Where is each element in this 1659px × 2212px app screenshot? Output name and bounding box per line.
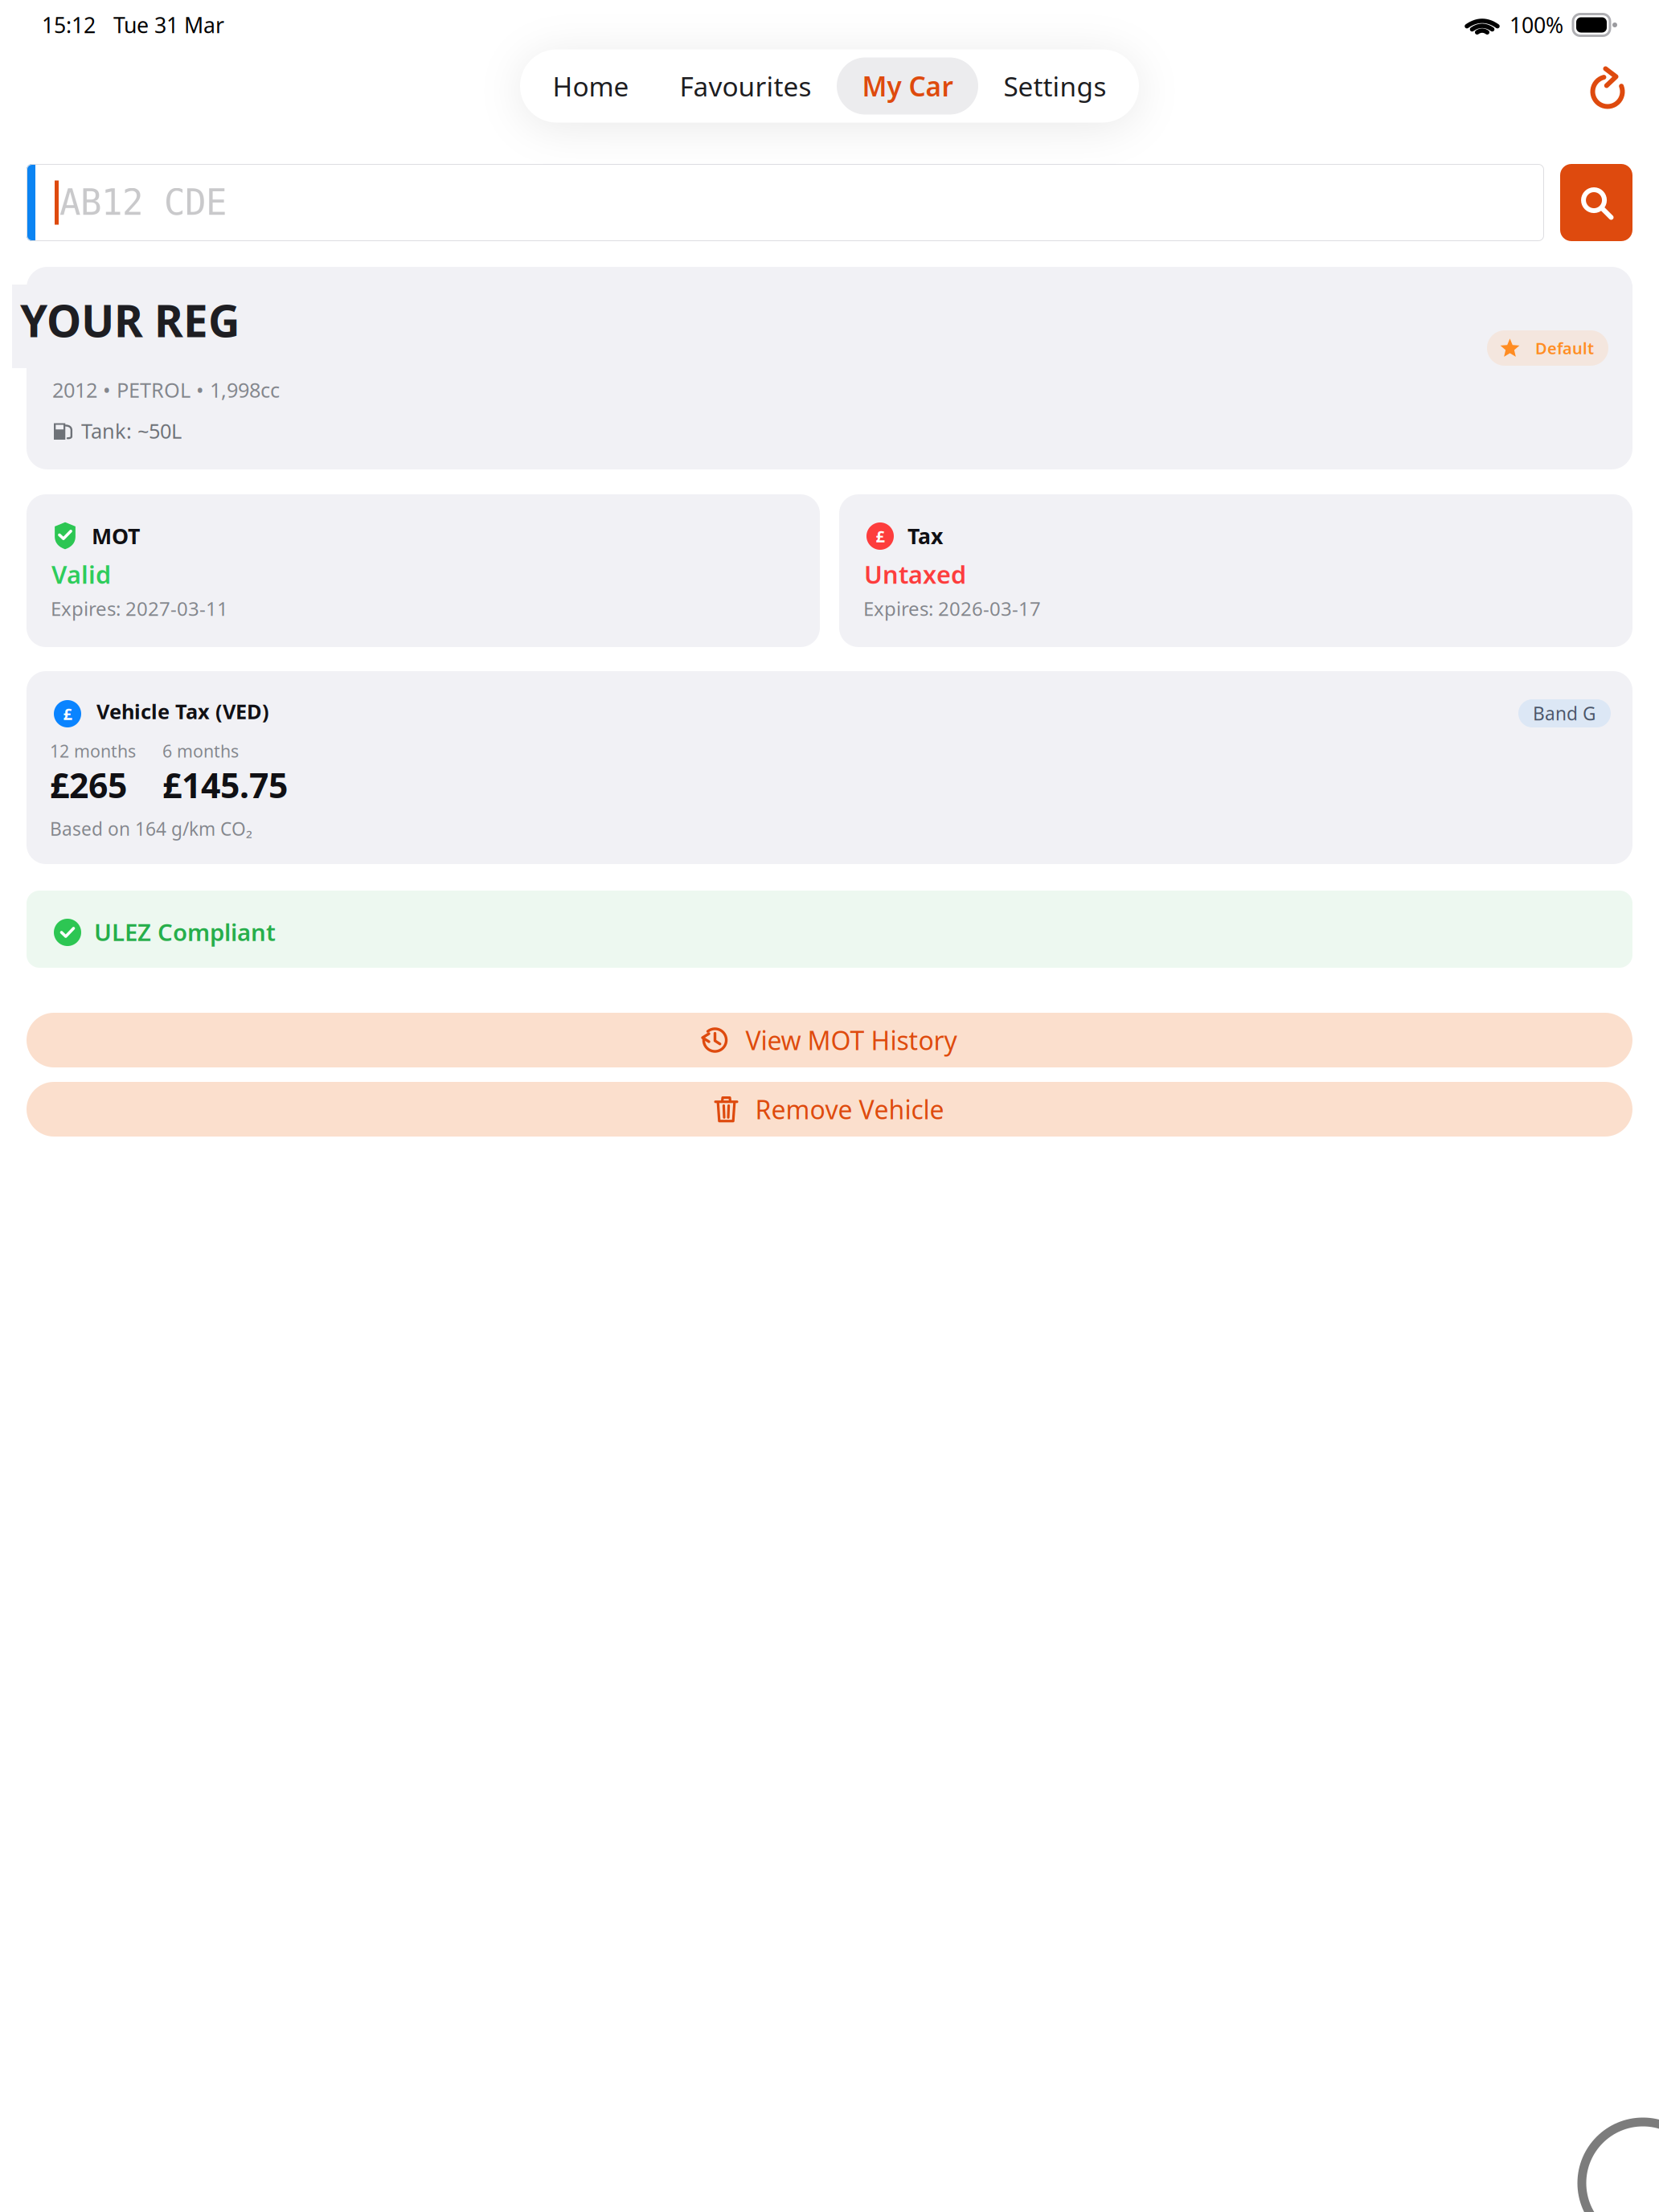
staticText: Tue 31 Mar: [113, 11, 224, 39]
staticText: Valid: [51, 558, 111, 591]
button[interactable]: View MOT History: [27, 1013, 1632, 1067]
button[interactable]: Search: [1560, 164, 1632, 241]
staticText: £: [876, 525, 885, 547]
staticText: 100%: [1509, 11, 1563, 39]
staticText: MOT: [92, 522, 140, 550]
button[interactable]: My Car: [837, 57, 978, 115]
button[interactable]: Home: [527, 57, 654, 115]
staticText: 15:12: [42, 11, 96, 39]
staticText: Vehicle Tax (VED): [96, 698, 269, 725]
button[interactable]: Refresh: [1569, 47, 1646, 125]
staticText: £265: [50, 762, 127, 808]
staticText: £145.75: [162, 762, 288, 808]
staticText: Untaxed: [864, 558, 966, 591]
staticText: Tax: [907, 522, 943, 550]
staticText: Default: [1535, 337, 1594, 359]
staticText: 12 months: [50, 739, 136, 762]
button[interactable]: Remove Vehicle: [27, 1082, 1632, 1137]
staticText: Favourites: [680, 68, 811, 104]
staticText: Band G: [1533, 701, 1596, 725]
staticText: ULEZ Compliant: [94, 916, 276, 948]
staticText: Based on 164 g/km CO₂: [50, 817, 252, 841]
button[interactable]: Favourites: [654, 57, 837, 115]
staticText: AB12 CDE: [59, 182, 227, 223]
staticText: My Car: [862, 68, 953, 104]
button[interactable]: Settings: [978, 57, 1132, 115]
staticText: Remove Vehicle: [755, 1092, 944, 1126]
staticText: Expires: 2027-03-11: [51, 596, 228, 621]
staticText: 2012 • PETROL • 1,998cc: [52, 376, 280, 403]
staticText: 6 months: [162, 739, 239, 762]
staticText: £: [63, 703, 72, 724]
staticText: Expires: 2026-03-17: [863, 596, 1041, 621]
staticText: Tank: ~50L: [81, 417, 182, 444]
staticText: Settings: [1004, 68, 1106, 104]
staticText: YOUR REG: [20, 291, 240, 349]
staticText: Home: [553, 68, 629, 104]
staticText: View MOT History: [746, 1023, 957, 1057]
